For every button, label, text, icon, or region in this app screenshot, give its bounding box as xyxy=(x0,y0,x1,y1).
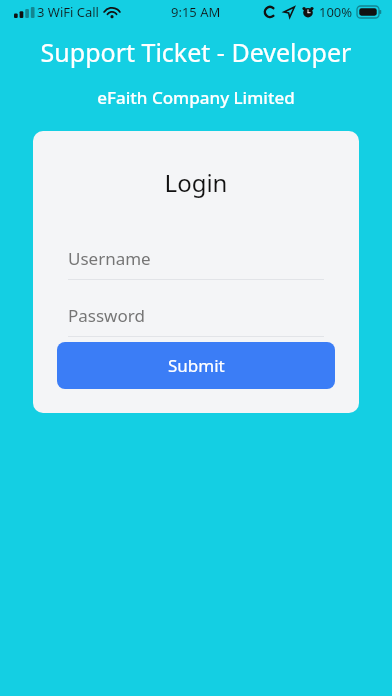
staticText: eFaith Company Limited xyxy=(0,86,392,109)
staticText: Login xyxy=(33,166,359,199)
staticText: Support Ticket - Developer xyxy=(0,35,392,69)
staticText: 9:15 AM xyxy=(171,3,221,21)
staticText: 100% xyxy=(319,3,353,21)
staticText: Password xyxy=(68,304,145,327)
staticText: 3 WiFi Call xyxy=(37,3,99,21)
button[interactable]: Username xyxy=(68,247,324,280)
staticText: Username xyxy=(68,247,151,270)
staticText: Submit xyxy=(168,354,225,377)
button[interactable]: Submit xyxy=(57,342,335,389)
button[interactable]: Password xyxy=(68,304,324,337)
